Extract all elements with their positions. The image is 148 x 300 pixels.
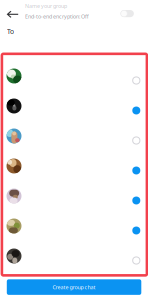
staticText: Name your group: [25, 2, 67, 9]
staticText: Create group chat: [52, 284, 95, 291]
button[interactable]: [0, 241, 148, 271]
button[interactable]: [0, 61, 148, 91]
button[interactable]: [0, 181, 148, 211]
button[interactable]: Back: [2, 5, 24, 23]
button[interactable]: [0, 121, 148, 151]
button[interactable]: Create group chat: [7, 279, 141, 295]
button[interactable]: End-to-end encryption: [120, 10, 134, 17]
button[interactable]: [0, 91, 148, 121]
staticText: End-to-end encryption: Off: [25, 13, 89, 20]
button[interactable]: [0, 151, 148, 181]
button[interactable]: [0, 211, 148, 241]
staticText: To: [7, 27, 14, 36]
